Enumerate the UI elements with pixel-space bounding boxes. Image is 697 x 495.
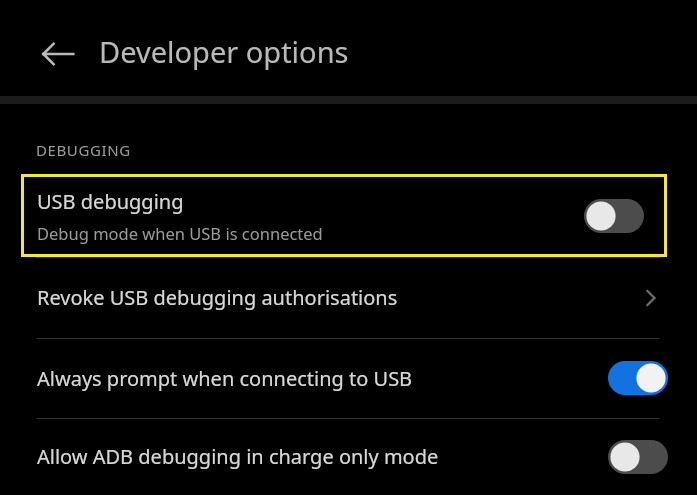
staticText: Allow ADB debugging in charge only mode [37, 443, 608, 470]
button[interactable]: USB debugging [21, 174, 667, 257]
staticText: Always prompt when connecting to USB [37, 365, 608, 392]
staticText: USB debugging [37, 188, 184, 215]
button[interactable]: On [608, 361, 668, 395]
button[interactable]: Allow ADB debugging in charge only mode [0, 418, 697, 495]
staticText: Developer options [99, 32, 349, 71]
staticText: Debug mode when USB is connected [37, 222, 323, 244]
staticText: DEBUGGING [36, 140, 131, 160]
button[interactable]: Back [30, 26, 86, 82]
button[interactable]: Off [584, 199, 644, 233]
staticText: Revoke USB debugging authorisations [37, 284, 638, 311]
button[interactable]: Revoke USB debugging authorisations [0, 257, 697, 338]
button[interactable]: Off [608, 440, 668, 474]
button[interactable]: Always prompt when connecting to USB [0, 338, 697, 418]
